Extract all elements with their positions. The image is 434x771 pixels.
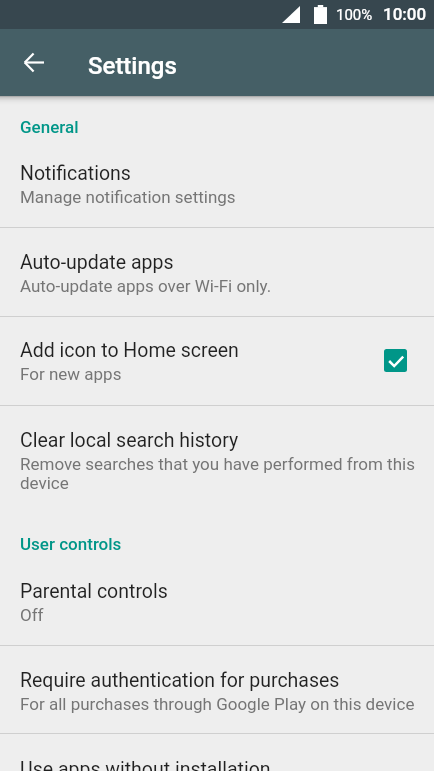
- staticText: Parental controls: [20, 581, 168, 603]
- staticText: Require authentication for purchases: [20, 670, 340, 692]
- staticText: Auto-update apps: [20, 252, 174, 274]
- button[interactable]: Notifications: [0, 137, 434, 227]
- button[interactable]: Require authentication for purchases: [0, 646, 434, 733]
- staticText: For new apps: [20, 365, 122, 384]
- button[interactable]: Add icon to Home screen: [0, 317, 434, 405]
- staticText: 100%: [336, 6, 373, 24]
- staticText: User controls: [20, 535, 122, 554]
- button[interactable]: Back: [0, 29, 66, 95]
- button[interactable]: Add icon to Home screen, on: [384, 349, 407, 372]
- staticText: Remove searches that you have performed …: [20, 455, 416, 493]
- staticText: Notifications: [20, 163, 131, 185]
- button[interactable]: Clear local search history: [0, 406, 434, 493]
- staticText: Off: [20, 606, 44, 625]
- staticText: Manage notification settings: [20, 188, 236, 207]
- staticText: Add icon to Home screen: [20, 340, 239, 362]
- staticText: Use apps without installation: [20, 759, 271, 771]
- button[interactable]: Parental controls: [0, 554, 434, 645]
- staticText: Clear local search history: [20, 430, 239, 452]
- button[interactable]: Use apps without installation: [0, 734, 434, 771]
- staticText: 10:00: [383, 5, 427, 24]
- staticText: Settings: [88, 52, 177, 80]
- staticText: Auto-update apps over Wi-Fi only.: [20, 277, 272, 296]
- button[interactable]: Auto-update apps: [0, 228, 434, 316]
- staticText: General: [20, 118, 79, 137]
- staticText: For all purchases through Google Play on…: [20, 695, 415, 714]
